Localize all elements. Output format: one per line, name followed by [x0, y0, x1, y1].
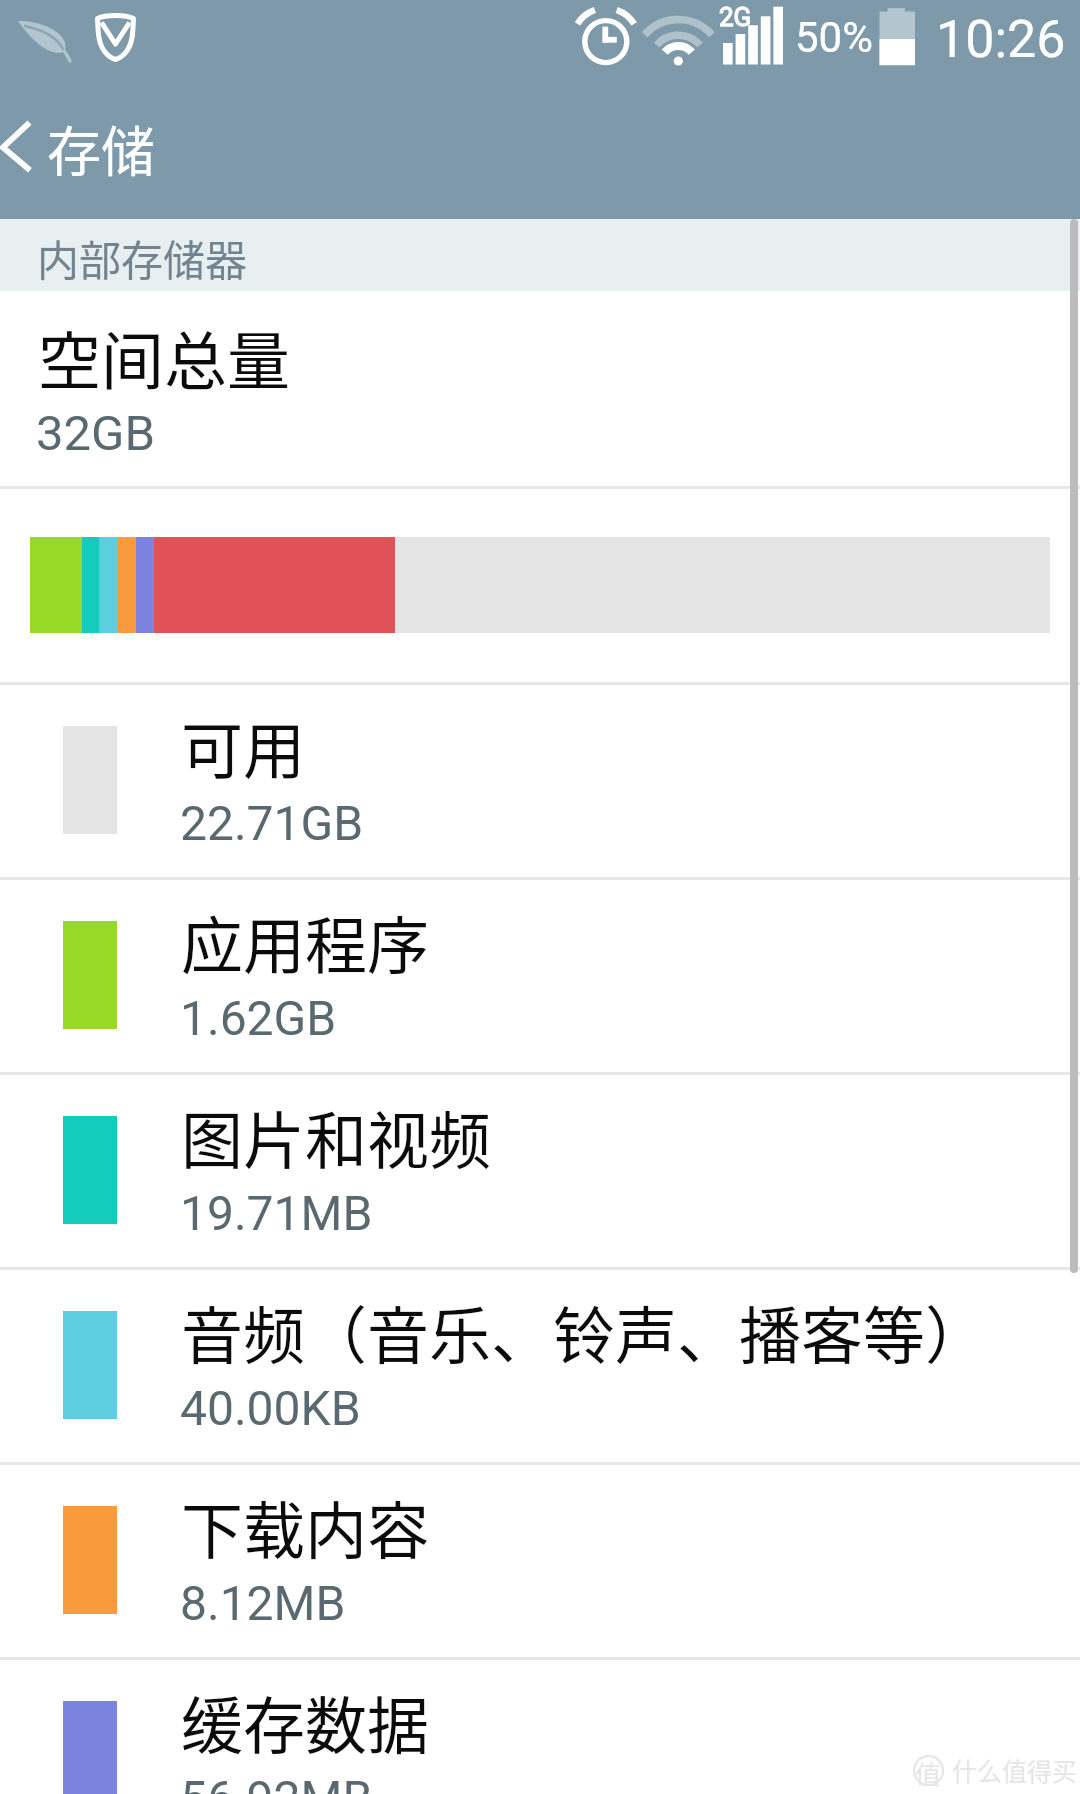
staticText: 音频（音乐、铃声、播客等）: [181, 1287, 988, 1377]
staticText: 缓存数据: [181, 1677, 430, 1767]
button[interactable]: 缓存数据: [0, 1660, 1080, 1794]
staticText: 什么值得买: [952, 1752, 1078, 1788]
staticText: 19.71MB: [180, 1185, 373, 1241]
button[interactable]: 应用程序: [0, 880, 1080, 1072]
staticText: 内部存储器: [37, 227, 248, 288]
staticText: 可用: [181, 702, 306, 792]
button[interactable]: 空间总量: [0, 291, 1080, 486]
staticText: 50%: [795, 13, 873, 62]
staticText: 1.62GB: [180, 990, 337, 1046]
staticText: 空间总量: [38, 311, 290, 402]
button[interactable]: 图片和视频: [0, 1075, 1080, 1267]
button[interactable]: 下载内容: [0, 1465, 1080, 1657]
button[interactable]: Back — 存储: [0, 88, 230, 219]
staticText: 22.71GB: [180, 795, 364, 851]
staticText: 下载内容: [181, 1482, 430, 1572]
staticText: 应用程序: [181, 897, 430, 987]
staticText: 10:26: [936, 9, 1066, 70]
staticText: 56.92MB: [180, 1770, 373, 1794]
staticText: 2G: [719, 2, 752, 32]
button[interactable]: 可用: [0, 685, 1080, 877]
staticText: 存储: [47, 109, 155, 187]
staticText: 值: [915, 1755, 942, 1786]
button[interactable]: 音频（音乐、铃声、播客等）: [0, 1270, 1080, 1462]
staticText: 40.00KB: [180, 1380, 361, 1436]
staticText: 图片和视频: [181, 1092, 492, 1182]
staticText: 32GB: [36, 405, 155, 462]
staticText: 8.12MB: [180, 1575, 346, 1631]
